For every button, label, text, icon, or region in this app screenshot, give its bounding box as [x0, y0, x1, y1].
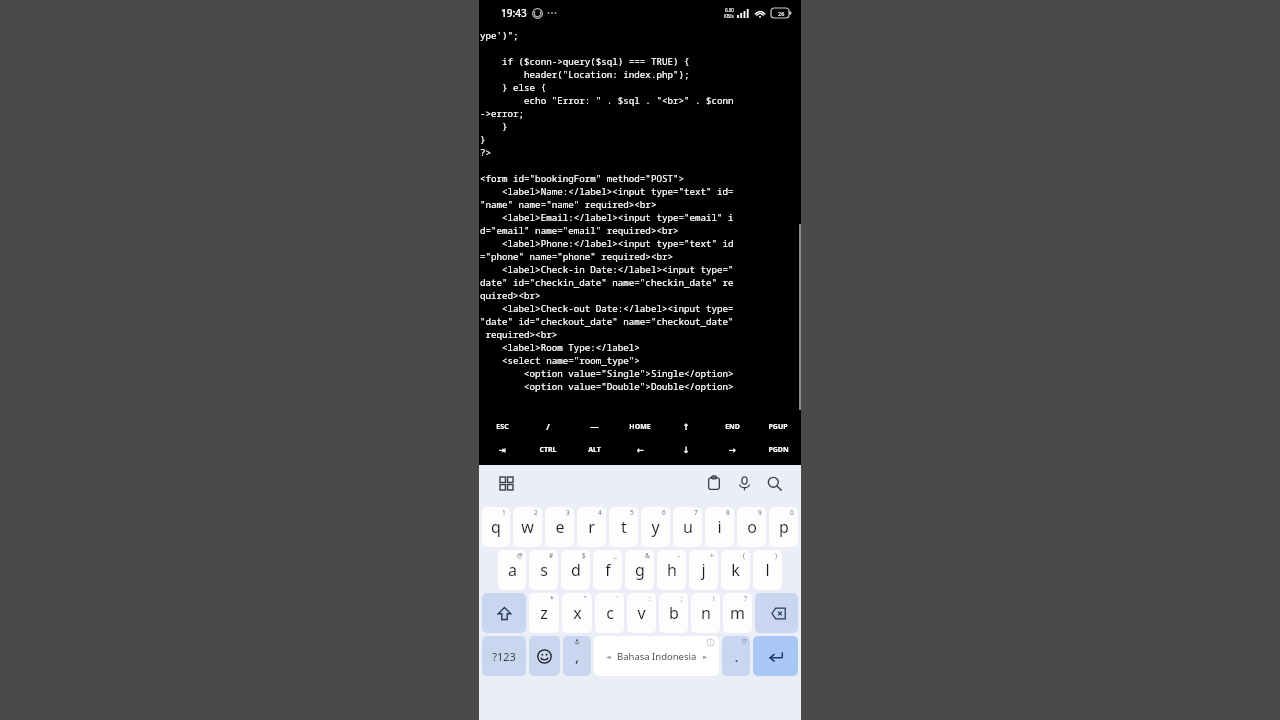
- button[interactable]: ESC: [479, 415, 525, 438]
- button[interactable]: x: [562, 593, 592, 633]
- button[interactable]: y: [641, 507, 670, 547]
- button[interactable]: ◄: [594, 636, 719, 676]
- button[interactable]: q: [482, 507, 510, 547]
- button[interactable]: HOME: [617, 415, 663, 438]
- staticText: required><br>: [480, 328, 558, 341]
- staticText: 1: [502, 508, 506, 517]
- button[interactable]: ALT: [571, 438, 617, 461]
- button[interactable]: Voice input: [729, 468, 759, 498]
- button[interactable]: ?123: [482, 636, 526, 676]
- button[interactable]: Enter: [753, 636, 798, 676]
- button[interactable]: r: [577, 507, 606, 547]
- button[interactable]: j: [689, 550, 718, 590]
- staticText: —: [590, 421, 599, 433]
- button[interactable]: f: [593, 550, 622, 590]
- button[interactable]: —: [571, 415, 617, 438]
- staticText: e: [555, 516, 565, 538]
- staticText: <select name="room_type">: [480, 354, 640, 367]
- button[interactable]: u: [673, 507, 702, 547]
- button[interactable]: Clipboard: [699, 468, 729, 498]
- staticText: d="email" name="email" required><br>: [480, 224, 679, 237]
- staticText: echo "Error: " . $sql . "<br>" . $conn: [480, 94, 734, 107]
- button[interactable]: e: [545, 507, 574, 547]
- button[interactable]: .: [722, 636, 750, 676]
- staticText: "date" id="checkout_date" name="checkout…: [480, 315, 734, 328]
- staticText: <label>Phone:</label><input type="text" …: [480, 237, 734, 250]
- button[interactable]: a: [498, 550, 526, 590]
- staticText: ,: [575, 646, 580, 666]
- button[interactable]: ⇥: [479, 438, 525, 461]
- button[interactable]: p: [769, 507, 798, 547]
- button[interactable]: ,: [563, 636, 591, 676]
- staticText: 5: [630, 508, 634, 517]
- staticText: q: [491, 516, 501, 538]
- staticText: ↑: [682, 422, 690, 432]
- staticText: b: [669, 602, 679, 624]
- staticText: 0: [790, 508, 794, 517]
- staticText: ALT: [588, 445, 601, 455]
- staticText: 7: [694, 508, 698, 517]
- staticText: m: [730, 602, 745, 624]
- button[interactable]: i: [705, 507, 734, 547]
- staticText: 0.00: [725, 7, 734, 13]
- staticText: HOME: [629, 422, 651, 432]
- staticText: ": [584, 594, 587, 603]
- button[interactable]: PGUP: [755, 415, 801, 438]
- button[interactable]: t: [609, 507, 638, 547]
- staticText: 19:43: [501, 6, 527, 20]
- staticText: ': [617, 594, 619, 603]
- button[interactable]: g: [625, 550, 654, 590]
- staticText: <option value="Single">Single</option>: [480, 367, 734, 380]
- button[interactable]: →: [709, 438, 755, 461]
- staticText: if ($conn->query($sql) === TRUE) {: [480, 55, 690, 68]
- button[interactable]: Keyboard modes: [493, 470, 519, 496]
- button[interactable]: o: [737, 507, 766, 547]
- button[interactable]: w: [513, 507, 542, 547]
- staticText: date" id="checkin_date" name="checkin_da…: [480, 276, 734, 289]
- button[interactable]: m: [723, 593, 752, 633]
- button[interactable]: l: [753, 550, 782, 590]
- staticText: -: [678, 551, 681, 560]
- button[interactable]: CTRL: [525, 438, 571, 461]
- button[interactable]: c: [595, 593, 624, 633]
- button[interactable]: END: [709, 415, 755, 438]
- staticText: ->error;: [480, 107, 525, 120]
- staticText: } else {: [480, 81, 547, 94]
- button[interactable]: h: [657, 550, 686, 590]
- staticText: /: [546, 421, 550, 433]
- staticText: .: [734, 646, 739, 666]
- staticText: <label>Email:</label><input type="email"…: [480, 211, 734, 224]
- button[interactable]: ↑: [663, 415, 709, 438]
- staticText: :: [649, 594, 651, 603]
- staticText: KB/s: [724, 13, 734, 19]
- button[interactable]: ↓: [663, 438, 709, 461]
- button[interactable]: k: [721, 550, 750, 590]
- staticText: }: [480, 133, 486, 146]
- staticText: p: [779, 516, 789, 538]
- button[interactable]: Emoji: [529, 636, 560, 676]
- staticText: 26: [778, 10, 785, 17]
- button[interactable]: v: [627, 593, 656, 633]
- staticText: @: [517, 551, 523, 560]
- button[interactable]: n: [691, 593, 720, 633]
- button[interactable]: Backspace: [755, 593, 798, 633]
- staticText: ←: [636, 445, 644, 455]
- staticText: o: [747, 516, 757, 538]
- button[interactable]: d: [561, 550, 590, 590]
- staticText: _: [614, 551, 617, 560]
- staticText: i: [717, 516, 722, 538]
- button[interactable]: s: [529, 550, 558, 590]
- button[interactable]: Shift: [482, 593, 526, 633]
- staticText: <form id="bookingForm" method="POST">: [480, 172, 684, 185]
- button[interactable]: Search: [759, 468, 789, 498]
- button[interactable]: PGDN: [755, 438, 801, 461]
- staticText: 3: [566, 508, 570, 517]
- staticText: #: [549, 551, 554, 560]
- button[interactable]: z: [529, 593, 559, 633]
- button[interactable]: b: [659, 593, 688, 633]
- staticText: 4: [598, 508, 602, 517]
- button[interactable]: ←: [617, 438, 663, 461]
- staticText: h: [667, 559, 677, 581]
- staticText: l: [765, 559, 770, 581]
- button[interactable]: /: [525, 415, 571, 438]
